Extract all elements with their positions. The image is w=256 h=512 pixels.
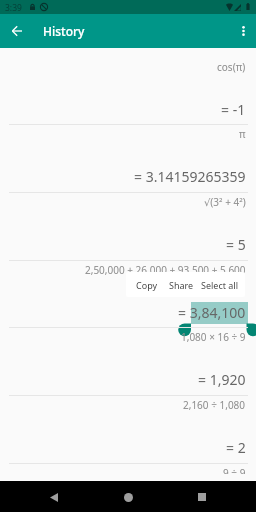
- staticText: Share: [169, 279, 194, 291]
- button[interactable]: Back: [42, 485, 66, 509]
- button[interactable]: Share: [164, 272, 199, 297]
- button[interactable]: cos(π): [0, 57, 256, 125]
- staticText: Copy: [136, 279, 158, 291]
- staticText: = 2: [226, 438, 246, 457]
- button[interactable]: √(3² + 4²): [0, 192, 256, 260]
- staticText: = 3.14159265359: [134, 167, 246, 186]
- staticText: = 3,84,100: [178, 303, 246, 322]
- button[interactable]: Back: [4, 18, 30, 44]
- button[interactable]: π: [0, 124, 256, 192]
- button[interactable]: More options: [230, 18, 256, 44]
- button[interactable]: Recent apps: [190, 485, 214, 509]
- button[interactable]: Copy: [131, 272, 163, 297]
- staticText: 1,080 × 16 ÷ 9: [181, 330, 246, 344]
- staticText: π: [239, 127, 246, 141]
- staticText: 3:39: [5, 2, 22, 14]
- staticText: 2,50,000 + 26,000 + 93,500 + 5,600: [85, 263, 246, 277]
- button[interactable]: Select all: [196, 272, 244, 297]
- staticText: cos(π): [217, 60, 246, 74]
- button[interactable]: Home: [116, 485, 140, 509]
- button[interactable]: 1,080 × 16 ÷ 9: [0, 327, 256, 395]
- staticText: = 1,920: [198, 370, 246, 389]
- button[interactable]: 2,50,000 + 26,000 + 93,500 + 5,600: [0, 260, 256, 328]
- staticText: √(3² + 4²): [204, 195, 246, 209]
- staticText: History: [43, 23, 85, 39]
- button[interactable]: 2,160 ÷ 1,080: [0, 395, 256, 463]
- staticText: Select all: [201, 279, 239, 291]
- staticText: 2,160 ÷ 1,080: [183, 398, 246, 412]
- button[interactable]: 9 ÷ 9: [0, 463, 256, 474]
- staticText: = -1: [221, 100, 246, 119]
- staticText: = 5: [226, 235, 246, 254]
- staticText: 9 ÷ 9: [223, 466, 246, 474]
